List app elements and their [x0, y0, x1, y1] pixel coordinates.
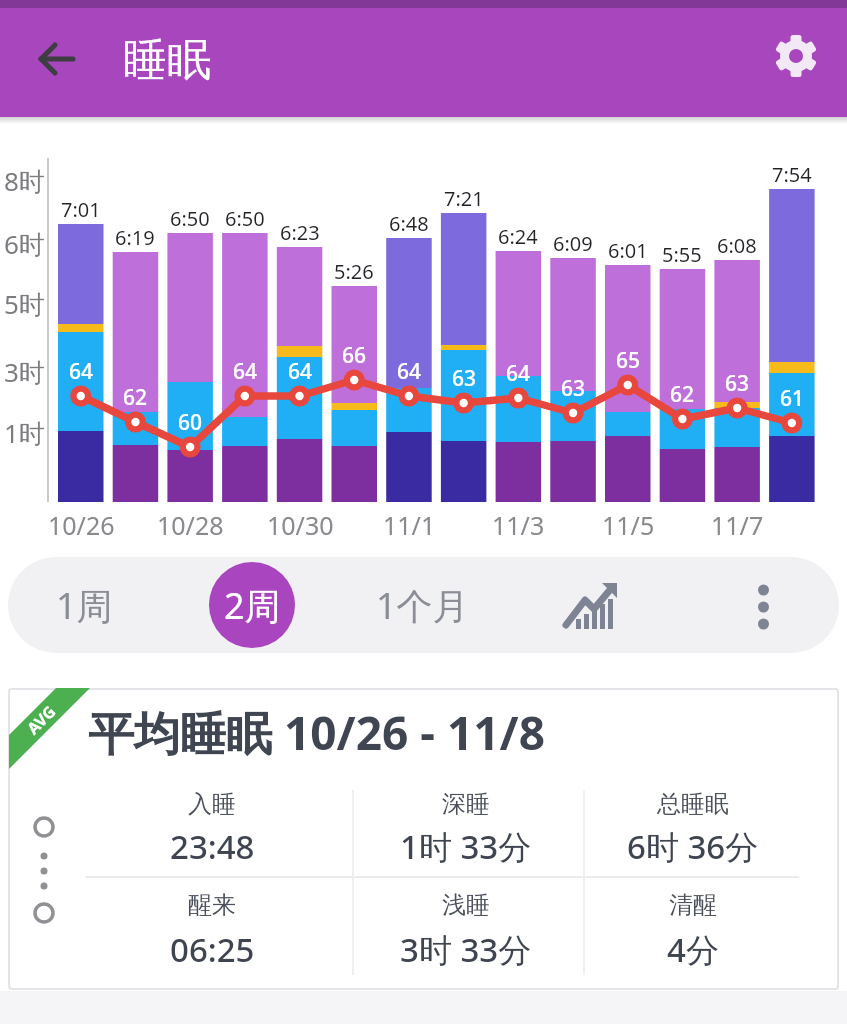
staticText: 入睡 — [188, 789, 236, 819]
staticText: 62 — [123, 383, 148, 412]
staticText: 64 — [506, 359, 531, 388]
staticText: 8时 — [4, 163, 45, 199]
staticText: 6时 36分 — [627, 824, 759, 869]
staticText: 3时 33分 — [400, 927, 532, 972]
staticText: 3时 — [4, 354, 45, 390]
staticText: 11/5 — [602, 508, 655, 542]
staticText: 6:19 — [115, 224, 155, 251]
staticText: 10/28 — [157, 508, 224, 542]
staticText: 06:25 — [170, 927, 255, 972]
staticText: 5时 — [4, 286, 45, 322]
staticText: 6:01 — [608, 237, 648, 264]
staticText: 7:21 — [444, 185, 484, 212]
staticText: 64 — [233, 357, 258, 386]
staticText: 6:50 — [225, 205, 265, 232]
staticText: 61 — [780, 384, 805, 413]
staticText: 2周 — [224, 581, 281, 630]
staticText: 6:48 — [389, 210, 429, 237]
staticText: 10/26 — [48, 508, 115, 542]
button[interactable] — [30, 32, 84, 86]
staticText: 11/3 — [492, 508, 545, 542]
staticText: 平均睡眠 10/26 - 11/8 — [88, 701, 545, 764]
button[interactable] — [8, 688, 839, 990]
staticText: 64 — [288, 357, 313, 386]
staticText: 11/1 — [383, 508, 436, 542]
button[interactable] — [24, 567, 144, 643]
staticText: 64 — [397, 357, 422, 386]
staticText: 6:50 — [170, 205, 210, 232]
staticText: 11/7 — [711, 508, 764, 542]
staticText: 6:09 — [553, 230, 593, 257]
staticText: 5:26 — [334, 258, 374, 285]
staticText: 5:55 — [662, 241, 702, 268]
staticText: 1个月 — [376, 581, 469, 630]
staticText: 66 — [342, 341, 367, 370]
staticText: 62 — [670, 380, 695, 409]
staticText: 1时 33分 — [400, 824, 532, 869]
button[interactable] — [770, 30, 822, 82]
staticText: 7:01 — [61, 196, 101, 223]
staticText: 浅睡 — [442, 890, 490, 920]
staticText: 60 — [178, 408, 203, 437]
button[interactable] — [360, 567, 490, 643]
staticText: 6时 — [4, 226, 45, 262]
staticText: AVG — [22, 700, 61, 739]
button[interactable] — [737, 578, 790, 634]
staticText: 6:24 — [498, 223, 538, 250]
staticText: 4分 — [667, 927, 719, 972]
staticText: 清醒 — [669, 890, 717, 920]
staticText: 1周 — [56, 581, 113, 630]
staticText: 睡眠 — [123, 33, 211, 88]
staticText: 63 — [561, 374, 586, 403]
staticText: 6:08 — [717, 232, 757, 259]
staticText: 6:23 — [280, 219, 320, 246]
staticText: 65 — [616, 346, 641, 375]
staticText: 23:48 — [170, 824, 255, 869]
staticText: 63 — [725, 369, 750, 398]
staticText: 10/30 — [267, 508, 334, 542]
staticText: 醒来 — [188, 890, 236, 920]
staticText: 64 — [69, 357, 94, 386]
staticText: 7:54 — [772, 161, 812, 188]
staticText: 1时 — [4, 415, 45, 451]
staticText: 深睡 — [442, 789, 490, 819]
staticText: 总睡眠 — [657, 789, 729, 819]
staticText: 63 — [452, 364, 477, 393]
button[interactable] — [564, 580, 620, 632]
button[interactable]: 2周 — [209, 562, 295, 648]
